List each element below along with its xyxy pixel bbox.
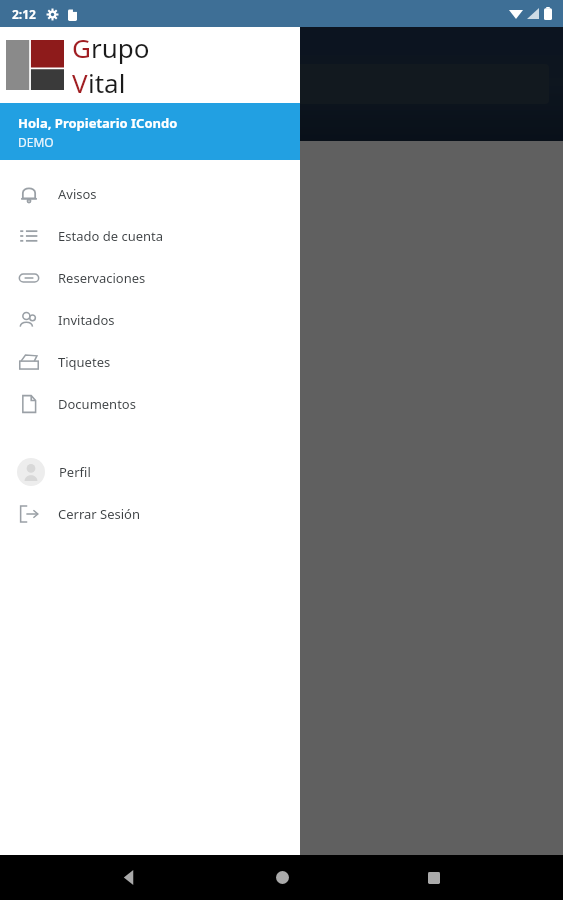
button[interactable]: Invitados [0, 299, 300, 341]
button[interactable]: Perfil [0, 451, 300, 493]
staticText: DEMO [18, 134, 54, 150]
button[interactable]: Hola, Propietario ICondo [0, 103, 300, 160]
button[interactable]: Avisos [0, 173, 300, 215]
staticText: Hola, Propietario ICondo [18, 114, 178, 132]
button[interactable]: Reservaciones [0, 257, 300, 299]
staticText: Invitados [58, 311, 115, 329]
staticText: Estado de cuenta [58, 227, 164, 245]
button[interactable]: Recent apps [410, 855, 458, 900]
button[interactable]: Documentos [0, 383, 300, 425]
button[interactable]: Tiquetes [0, 341, 300, 383]
staticText: Cerrar Sesión [58, 505, 141, 523]
button[interactable]: Cerrar Sesión [0, 493, 300, 535]
button[interactable]: Home [258, 855, 306, 900]
staticText: V [72, 65, 88, 100]
staticText: Tiquetes [58, 353, 111, 371]
button[interactable]: Back [105, 855, 153, 900]
staticText: Perfil [59, 463, 91, 481]
staticText: 2:12 [12, 6, 36, 22]
staticText: G [72, 30, 91, 65]
button[interactable]: Estado de cuenta [0, 215, 300, 257]
staticText: Avisos [58, 185, 97, 203]
staticText: Reservaciones [58, 269, 146, 287]
staticText: Documentos [58, 395, 136, 413]
staticText: rupo [91, 30, 150, 65]
button[interactable] [12, 64, 549, 104]
staticText: ital [88, 65, 126, 100]
